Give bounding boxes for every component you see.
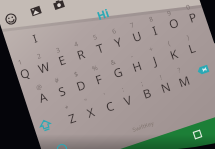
staticText: P <box>187 8 199 26</box>
staticText: ( <box>167 38 171 48</box>
staticText: V <box>122 91 134 109</box>
staticText: ) <box>186 32 190 42</box>
staticText: 6 <box>111 26 117 36</box>
button[interactable]: Backspace <box>195 62 211 78</box>
staticText: I <box>150 22 160 38</box>
button[interactable]: Recent apps <box>190 127 204 141</box>
staticText: 3 <box>55 45 61 55</box>
staticText: 0 <box>185 2 191 12</box>
staticText: 2 <box>36 51 42 61</box>
staticText: I <box>31 30 39 46</box>
staticText: B <box>141 84 153 102</box>
staticText: @ <box>35 82 43 92</box>
staticText: E <box>56 51 68 69</box>
staticText: ' <box>103 90 107 100</box>
staticText: G <box>111 63 125 81</box>
staticText: K <box>168 45 180 63</box>
staticText: M <box>176 72 192 90</box>
staticText: - <box>129 51 135 61</box>
staticText: S <box>56 82 68 100</box>
staticText: O <box>167 14 181 32</box>
staticText: Q <box>18 64 32 82</box>
button[interactable]: Camera <box>51 0 67 13</box>
staticText: T <box>94 39 106 57</box>
staticText: 1 <box>17 57 23 67</box>
staticText: + <box>148 44 154 54</box>
staticText: U <box>130 27 144 45</box>
button[interactable]: Shift <box>37 117 54 134</box>
staticText: # <box>53 75 61 85</box>
staticText: 4 <box>73 39 79 49</box>
staticText: & <box>109 57 117 67</box>
staticText: % <box>91 63 99 73</box>
staticText: F <box>93 70 105 88</box>
staticText: " <box>83 96 89 106</box>
staticText: D <box>74 76 88 94</box>
button[interactable]: Insert picture <box>28 3 44 19</box>
staticText: 5 <box>92 32 98 42</box>
staticText: 8 <box>148 14 154 24</box>
staticText: : <box>121 84 125 94</box>
staticText: N <box>159 78 173 96</box>
staticText: 9 <box>166 8 172 18</box>
staticText: Z <box>66 109 78 127</box>
staticText: A <box>37 88 49 106</box>
button[interactable]: Emoji <box>3 11 19 27</box>
staticText: 7 <box>129 20 135 30</box>
staticText: $ <box>73 69 79 79</box>
staticText: C <box>104 97 116 115</box>
staticText: Y <box>112 33 124 51</box>
staticText: X <box>85 103 97 121</box>
staticText: * <box>64 103 70 113</box>
staticText: ? <box>176 65 182 75</box>
staticText: SwiftKey <box>131 119 155 133</box>
staticText: J <box>151 52 159 68</box>
staticText: W <box>36 57 52 76</box>
button[interactable]: Emoji keyboard <box>56 143 68 149</box>
staticText: L <box>186 39 198 57</box>
staticText: H <box>130 57 144 75</box>
staticText: ; <box>140 78 144 88</box>
staticText: R <box>75 45 87 63</box>
staticText: Hi <box>95 5 111 23</box>
staticText: ! <box>159 72 163 82</box>
